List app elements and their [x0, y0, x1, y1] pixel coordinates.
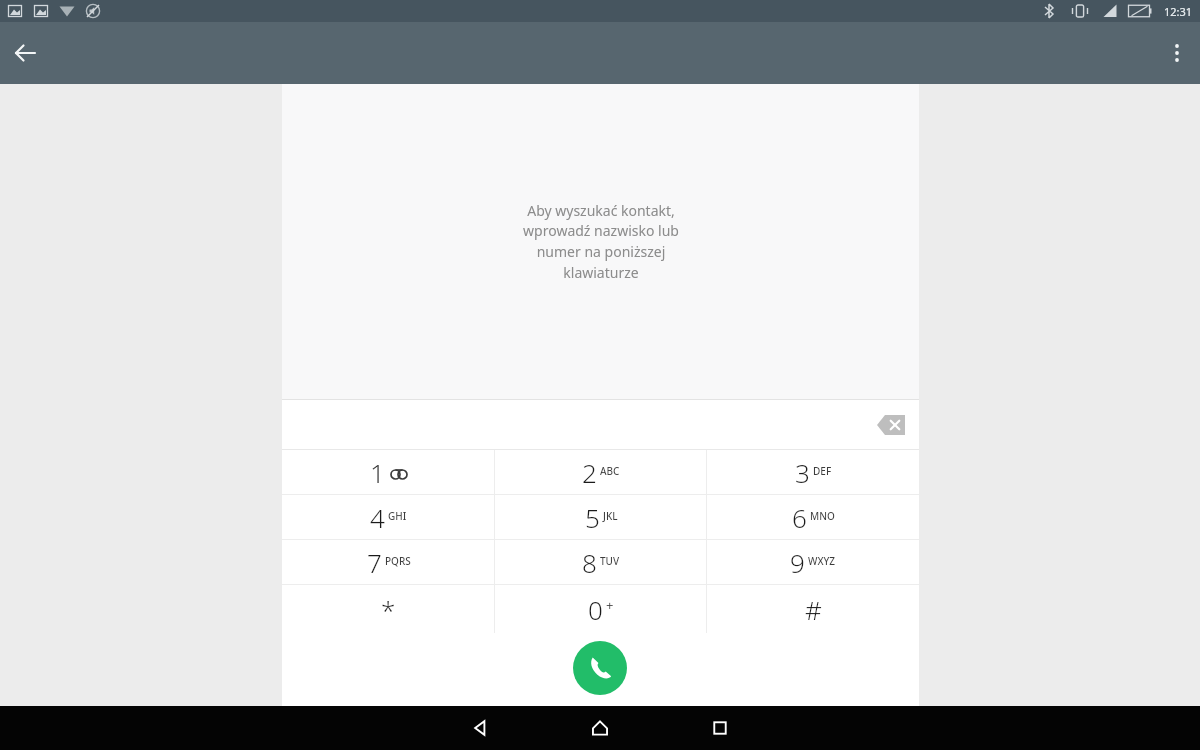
staticText: Aby wyszukać kontakt, wprowadź nazwisko … — [523, 201, 679, 283]
button[interactable]: * — [282, 585, 495, 633]
staticText: ABC — [600, 464, 620, 478]
button[interactable]: Recents — [660, 706, 780, 750]
button[interactable]: 3 — [707, 450, 919, 494]
button[interactable]: # — [707, 585, 919, 633]
button[interactable]: Backspace — [869, 403, 913, 447]
staticText: GHI — [388, 509, 407, 523]
staticText: # — [805, 592, 822, 627]
button[interactable]: Home — [540, 706, 660, 750]
staticText: + — [606, 596, 614, 614]
button[interactable]: 6 — [707, 495, 919, 539]
staticText: 6 — [792, 500, 807, 535]
button[interactable]: 1 — [282, 450, 495, 494]
button[interactable]: Call — [573, 641, 627, 695]
staticText: WXYZ — [808, 554, 836, 568]
button[interactable]: Back — [420, 706, 540, 750]
staticText: 2 — [582, 455, 597, 490]
staticText: 9 — [790, 545, 805, 580]
button[interactable]: 9 — [707, 540, 919, 584]
button[interactable]: 4 — [282, 495, 495, 539]
button[interactable]: 8 — [495, 540, 707, 584]
staticText: JKL — [603, 509, 618, 523]
button[interactable]: More options — [1150, 28, 1200, 78]
staticText: TUV — [600, 554, 620, 568]
staticText: PQRS — [385, 554, 411, 568]
staticText: 8 — [582, 545, 597, 580]
button[interactable]: 5 — [495, 495, 707, 539]
staticText: 0 — [588, 592, 603, 627]
button[interactable]: 2 — [495, 450, 707, 494]
staticText: 7 — [367, 545, 382, 580]
staticText: 4 — [370, 500, 385, 535]
staticText: 5 — [585, 500, 600, 535]
button[interactable]: 0 — [495, 585, 707, 633]
staticText: 1 — [370, 455, 385, 490]
button[interactable]: Back — [0, 25, 56, 81]
staticText: DEF — [813, 464, 832, 478]
staticText: 3 — [795, 455, 810, 490]
button[interactable]: 7 — [282, 540, 495, 584]
staticText: * — [381, 592, 396, 627]
staticText: MNO — [810, 509, 835, 523]
staticText: 12:31 — [1164, 4, 1193, 19]
